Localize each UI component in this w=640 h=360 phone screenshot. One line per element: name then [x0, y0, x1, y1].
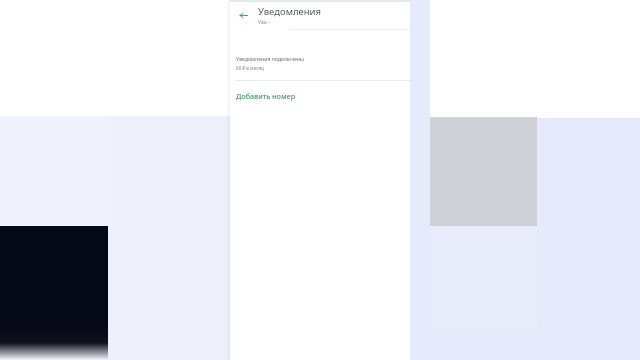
staticText: Добавить номер — [236, 91, 296, 101]
staticText: Уведомления — [258, 5, 321, 18]
button[interactable]: Уведомления подключены — [230, 55, 410, 71]
button[interactable]: Добавить номер — [230, 90, 410, 105]
button[interactable]: Назад — [230, 2, 256, 28]
staticText: 60 ₽ в месяц — [236, 65, 264, 71]
staticText: Visa ·· — [258, 19, 271, 25]
staticText: Уведомления подключены — [236, 55, 304, 62]
